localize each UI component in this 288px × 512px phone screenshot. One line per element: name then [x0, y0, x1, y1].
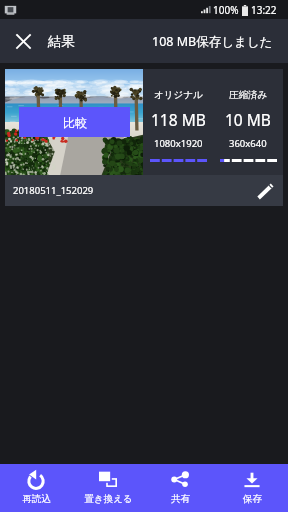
staticText: 圧縮済み — [229, 89, 268, 101]
staticText: 結果 — [48, 33, 75, 50]
staticText: 13:22 — [251, 3, 277, 17]
staticText: 108 MB保存しました — [152, 33, 273, 50]
button[interactable]: 保存 — [216, 464, 288, 512]
staticText: 再読込 — [22, 493, 51, 505]
staticText: 保存 — [243, 493, 262, 505]
staticText: 10 MB — [225, 109, 271, 130]
staticText: 118 MB — [151, 109, 206, 130]
button[interactable]: Close — [9, 27, 38, 56]
staticText: オリジナル — [154, 89, 203, 101]
staticText: 100% — [213, 3, 239, 17]
button[interactable]: 比較 — [19, 107, 130, 137]
button[interactable]: Edit — [252, 178, 278, 204]
button[interactable]: 再読込 — [0, 464, 72, 512]
staticText: 共有 — [171, 493, 190, 505]
staticText: 置き換える — [84, 493, 133, 505]
staticText: 1080x1920 — [154, 137, 203, 150]
button[interactable]: 置き換える — [72, 464, 144, 512]
staticText: 20180511_152029 — [13, 184, 94, 197]
staticText: 360x640 — [229, 137, 267, 150]
staticText: 比較 — [63, 115, 87, 130]
button[interactable]: 共有 — [144, 464, 216, 512]
